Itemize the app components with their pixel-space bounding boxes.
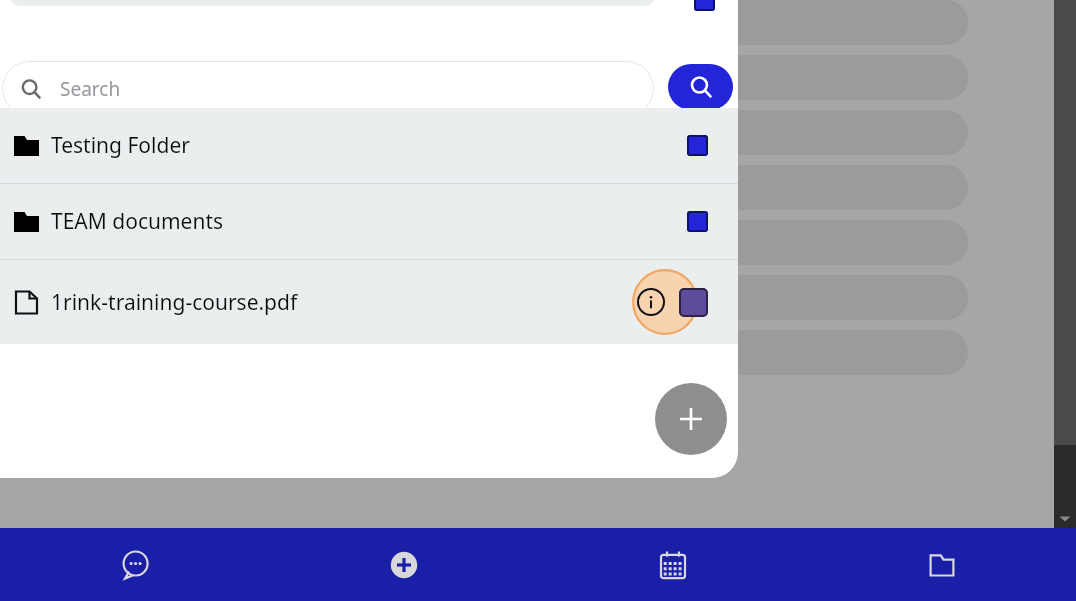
button[interactable]: 1rink-training-course.pdf [0,260,738,344]
button[interactable] [687,211,708,232]
button[interactable]: TEAM documents [0,184,738,259]
staticText: Testing Folder [51,131,190,160]
button[interactable]: Testing Folder [0,108,738,183]
button[interactable]: Create [269,528,538,601]
staticText: TEAM documents [51,207,224,236]
button[interactable]: Files [807,528,1076,601]
button[interactable]: Info [637,288,665,316]
button[interactable] [679,288,708,317]
button[interactable]: Chats [0,528,269,601]
staticText: 1rink-training-course.pdf [51,288,298,317]
button[interactable] [687,135,708,156]
button[interactable]: Search [668,64,733,110]
button[interactable]: Add [655,383,727,455]
button[interactable]: Search [2,61,654,116]
button[interactable]: Calendar [538,528,807,601]
staticText: Search [60,76,121,102]
